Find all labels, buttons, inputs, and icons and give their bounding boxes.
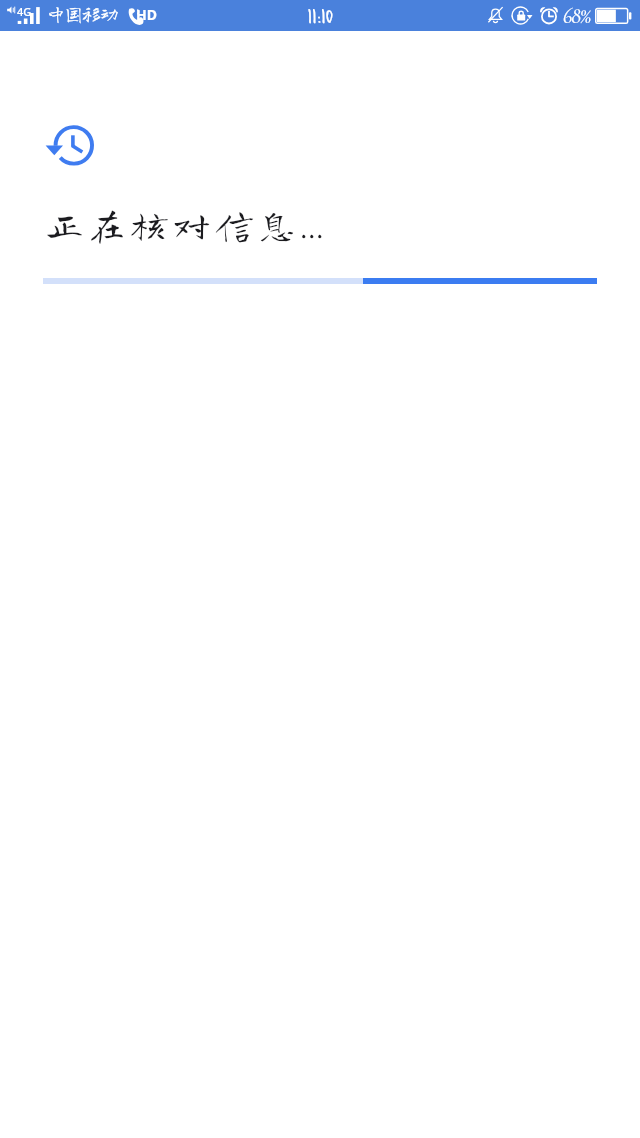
button[interactable] <box>43 278 597 284</box>
staticText: 正在核对信息... <box>45 205 324 244</box>
button[interactable]: History <box>42 122 90 170</box>
staticText: 中国移动 <box>46 3 118 23</box>
staticText: 68% <box>563 3 591 30</box>
staticText: HD <box>136 5 157 24</box>
staticText: 11:10 <box>307 1 333 28</box>
staticText: 4G <box>17 4 32 19</box>
